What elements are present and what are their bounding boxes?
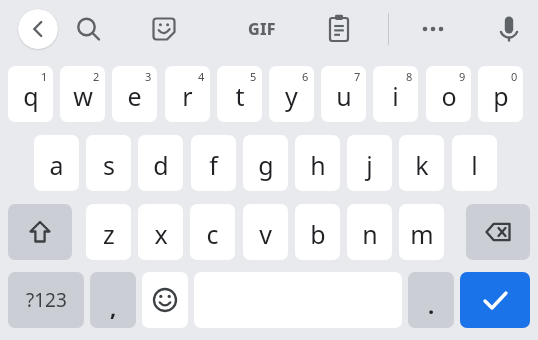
staticText: GIF [248, 18, 276, 40]
staticText: 9 [459, 69, 466, 84]
staticText: 4 [198, 69, 205, 84]
button[interactable]: z [86, 204, 131, 260]
button[interactable]: o [426, 66, 471, 122]
staticText: 7 [354, 69, 361, 84]
staticText: i [392, 79, 399, 113]
button[interactable]: Enter [460, 272, 530, 328]
staticText: d [153, 148, 169, 182]
button[interactable]: k [399, 135, 444, 191]
button[interactable]: . [408, 272, 454, 328]
staticText: m [410, 217, 434, 251]
button[interactable]: w [60, 66, 105, 122]
staticText: v [259, 217, 272, 251]
staticText: 1 [41, 69, 48, 84]
staticText: 2 [93, 69, 100, 84]
button[interactable]: e [112, 66, 157, 122]
staticText: z [103, 217, 115, 251]
button[interactable]: Search [64, 5, 112, 53]
staticText: , [110, 292, 117, 322]
button[interactable]: Back [18, 9, 58, 49]
staticText: h [310, 148, 326, 182]
staticText: p [493, 79, 509, 113]
staticText: w [73, 79, 93, 113]
button[interactable]: d [138, 135, 183, 191]
staticText: l [471, 148, 478, 182]
staticText: r [182, 79, 193, 113]
staticText: b [310, 217, 326, 251]
button[interactable]: Clipboard [315, 5, 363, 53]
button[interactable]: Voice input [485, 5, 533, 53]
staticText: ?123 [26, 287, 67, 313]
staticText: x [154, 217, 168, 251]
button[interactable]: More options [409, 5, 457, 53]
staticText: o [441, 79, 457, 113]
button[interactable]: y [269, 66, 314, 122]
staticText: t [235, 79, 245, 113]
button[interactable]: c [190, 204, 235, 260]
button[interactable]: Stickers [140, 5, 188, 53]
staticText: 8 [406, 69, 413, 84]
button[interactable]: u [321, 66, 366, 122]
button[interactable]: h [295, 135, 340, 191]
staticText: 3 [145, 69, 152, 84]
staticText: e [127, 79, 142, 113]
staticText: q [23, 79, 39, 113]
staticText: s [103, 148, 115, 182]
button[interactable]: a [34, 135, 79, 191]
button[interactable]: n [347, 204, 392, 260]
staticText: n [362, 217, 378, 251]
button[interactable]: GIF [236, 0, 288, 58]
staticText: u [336, 79, 352, 113]
staticText: 0 [511, 69, 518, 84]
button[interactable]: t [217, 66, 262, 122]
button[interactable]: q [8, 66, 53, 122]
staticText: 6 [302, 69, 309, 84]
staticText: g [258, 148, 274, 182]
button[interactable]: r [165, 66, 210, 122]
button[interactable]: s [86, 135, 131, 191]
staticText: 5 [250, 69, 257, 84]
staticText: . [428, 290, 435, 320]
button[interactable]: j [347, 135, 392, 191]
button[interactable]: i [373, 66, 418, 122]
staticText: j [366, 148, 373, 182]
button[interactable]: b [295, 204, 340, 260]
button[interactable]: , [90, 272, 136, 328]
button[interactable]: v [243, 204, 288, 260]
staticText: f [209, 148, 218, 182]
button[interactable]: m [399, 204, 444, 260]
staticText: y [285, 79, 298, 113]
button[interactable]: g [243, 135, 288, 191]
staticText: c [206, 217, 219, 251]
button[interactable]: Emoji [142, 272, 188, 328]
button[interactable]: f [191, 135, 236, 191]
button[interactable]: ?123 [8, 272, 84, 328]
staticText: a [49, 148, 64, 182]
button[interactable]: p [478, 66, 523, 122]
button[interactable]: l [452, 135, 497, 191]
staticText: k [415, 148, 429, 182]
button[interactable]: Backspace [466, 204, 530, 260]
button[interactable]: Shift [8, 204, 72, 260]
button[interactable]: x [138, 204, 183, 260]
